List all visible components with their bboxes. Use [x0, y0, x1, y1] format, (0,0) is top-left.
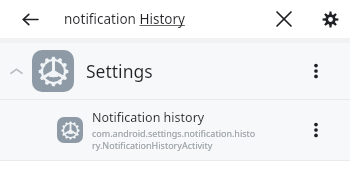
button[interactable]: notification History: [64, 0, 185, 38]
button[interactable]: Notification history: [0, 100, 350, 160]
button[interactable]: Clear search: [268, 3, 300, 35]
staticText: ry.NotificationHistoryActivity: [92, 139, 213, 151]
button[interactable]: Collapse: [4, 59, 28, 83]
button[interactable]: More options: [302, 57, 330, 85]
staticText: Settings: [86, 59, 153, 83]
button[interactable]: Collapse: [0, 43, 350, 99]
staticText: Notification history: [92, 109, 205, 126]
button[interactable]: Back: [14, 3, 46, 35]
staticText: com.android.settings.notification.histo: [92, 127, 256, 139]
button[interactable]: Settings: [314, 3, 346, 35]
button[interactable]: More options: [302, 116, 330, 144]
staticText: notification History: [64, 10, 185, 28]
